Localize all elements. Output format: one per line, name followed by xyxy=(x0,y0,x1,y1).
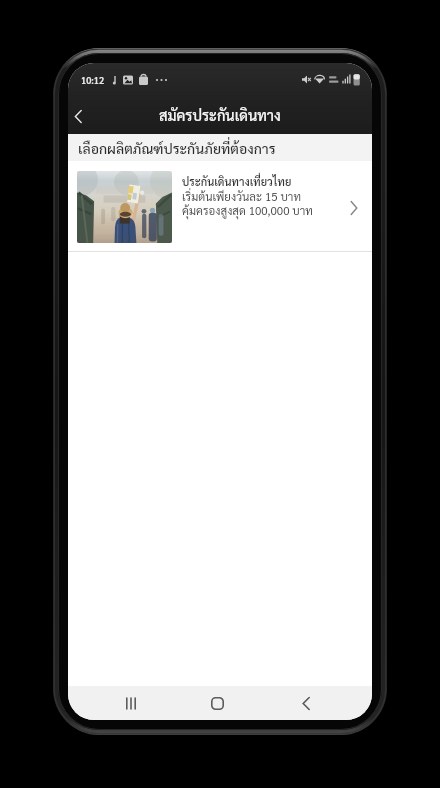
staticText: ประกันเดินทางเที่ยวไทย xyxy=(182,174,292,188)
staticText: เริ่มต้นเพียงวันละ 15 บาท xyxy=(182,189,301,204)
staticText: 10:12 xyxy=(81,74,105,86)
button[interactable] xyxy=(291,688,321,718)
staticText: คุ้มครองสูงสุด 100,000 บาท xyxy=(182,203,313,218)
button[interactable]: ประกันเดินทางเที่ยวไทย xyxy=(68,161,372,251)
staticText: สมัครประกันเดินทาง xyxy=(159,106,281,125)
button[interactable] xyxy=(116,688,146,718)
button[interactable] xyxy=(68,103,88,129)
staticText: เลือกผลิตภัณฑ์ประกันภัยที่ต้องการ xyxy=(78,139,276,157)
button[interactable] xyxy=(202,688,232,718)
